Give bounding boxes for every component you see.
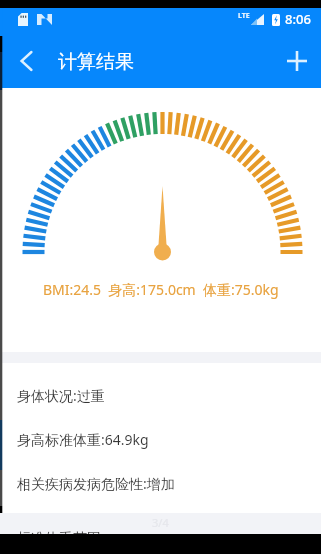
button[interactable]: 相关疾病发病危险性:增加 bbox=[0, 461, 321, 505]
staticText: 计算结果 bbox=[58, 50, 134, 74]
button[interactable]: Add bbox=[272, 30, 321, 88]
staticText: 身高标准体重:64.9kg bbox=[17, 430, 149, 449]
staticText: 身体状况:过重 bbox=[17, 386, 105, 405]
button[interactable]: Back bbox=[0, 30, 52, 88]
staticText: 8:06 bbox=[285, 10, 311, 28]
staticText: 标准体重范围 bbox=[17, 530, 101, 548]
staticText: BMI:24.5 身高:175.0cm 体重:75.0kg bbox=[43, 280, 279, 299]
button[interactable]: 身高标准体重:64.9kg bbox=[0, 417, 321, 461]
button[interactable]: 身体状况:过重 bbox=[0, 373, 321, 417]
staticText: 相关疾病发病危险性:增加 bbox=[17, 474, 175, 493]
staticText: LTE bbox=[238, 11, 250, 21]
staticText: 3/4 bbox=[152, 515, 169, 530]
